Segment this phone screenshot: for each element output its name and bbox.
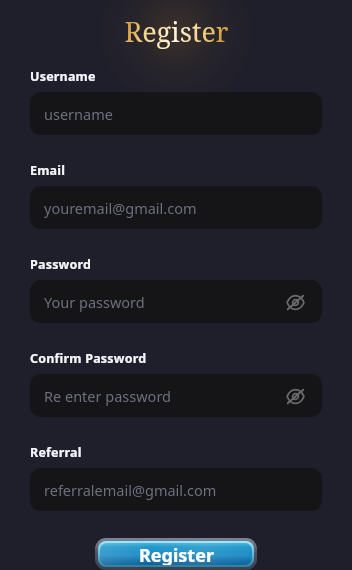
staticText: Your password	[44, 292, 145, 312]
staticText: username	[44, 104, 113, 124]
button[interactable]: Show password	[282, 383, 308, 409]
staticText: Referral	[30, 444, 82, 461]
staticText: Confirm Password	[30, 350, 147, 367]
staticText: Re enter password	[44, 386, 172, 406]
button[interactable]: username	[30, 92, 322, 135]
button[interactable]: referralemail@gmail.com	[30, 468, 322, 511]
staticText: Register	[124, 13, 229, 50]
button[interactable]: Show password	[282, 289, 308, 315]
staticText: Password	[30, 256, 92, 273]
button[interactable]: Register	[95, 538, 257, 570]
staticText: youremail@gmail.com	[44, 198, 197, 218]
staticText: Email	[30, 162, 66, 179]
staticText: referralemail@gmail.com	[44, 480, 217, 500]
button[interactable]: Your password	[30, 280, 322, 323]
staticText: Username	[30, 68, 96, 85]
button[interactable]: Re enter password	[30, 374, 322, 417]
button[interactable]: youremail@gmail.com	[30, 186, 322, 229]
staticText: Register	[139, 543, 214, 565]
